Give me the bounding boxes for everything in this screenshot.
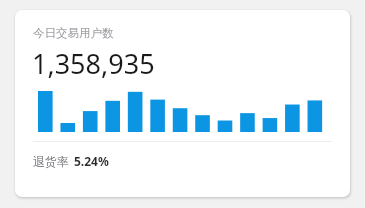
staticText: 5.24% [74, 153, 109, 169]
staticText: 1,358,935 [32, 45, 155, 82]
staticText: 退货率 [33, 154, 69, 169]
staticText: 今日交易用户数 [33, 26, 114, 40]
button[interactable]: 今日交易用户数 [15, 10, 350, 197]
button[interactable]: 退货率 [33, 153, 109, 169]
